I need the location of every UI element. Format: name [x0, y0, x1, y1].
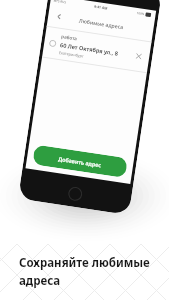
staticText: Сохраняйте любимые	[19, 255, 150, 271]
button[interactable]: Назад	[51, 9, 67, 24]
staticText: MTS RUS	[53, 0, 67, 4]
staticText: 100%	[136, 11, 145, 16]
staticText: 60 Лет Октября ул., 8	[59, 41, 119, 58]
staticText: адреса	[19, 273, 61, 289]
button[interactable]: работа	[42, 27, 151, 72]
staticText: работа	[61, 33, 78, 41]
button[interactable]: Удалить адрес	[131, 49, 145, 62]
staticText: Любимые адреса	[78, 17, 124, 30]
staticText: Добавить адрес	[58, 155, 102, 168]
staticText: 9:41 AM	[94, 4, 108, 11]
staticText: Екатеринбург	[59, 50, 84, 59]
button[interactable]: Добавить адрес	[32, 144, 128, 178]
